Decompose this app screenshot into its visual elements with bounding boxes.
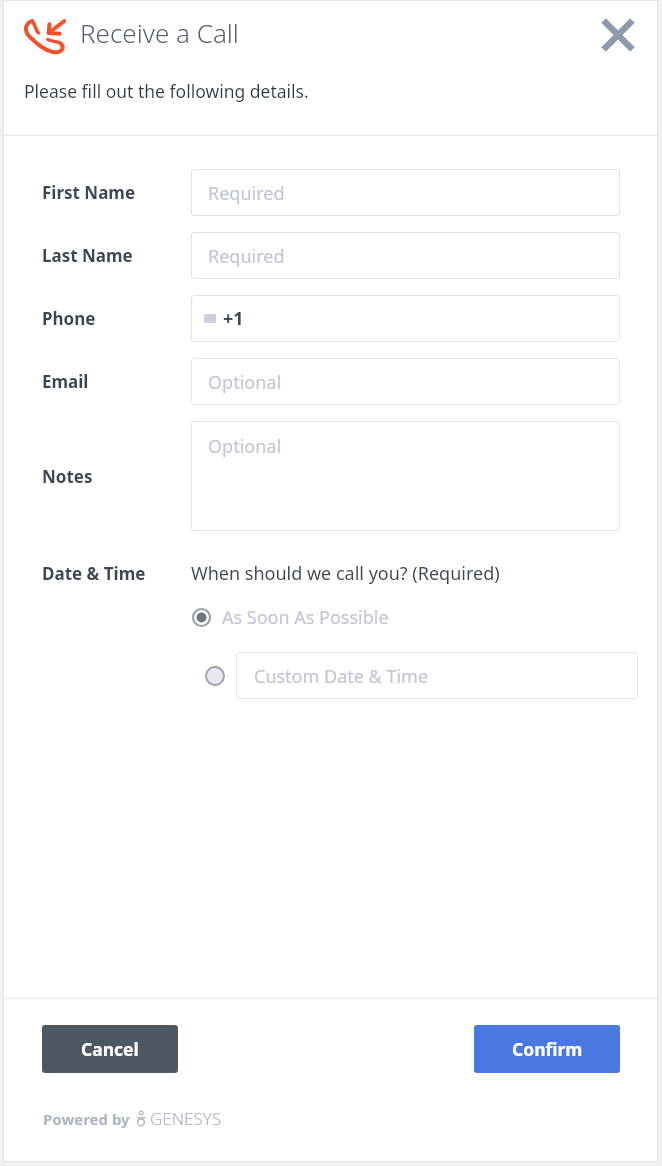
button[interactable]: Custom Date & Time <box>191 652 638 699</box>
button[interactable]: Required <box>191 232 620 279</box>
staticText: Receive a Call <box>80 15 239 50</box>
staticText: Date & Time <box>42 562 191 585</box>
button[interactable]: Cancel <box>42 1025 178 1073</box>
staticText: As Soon As Possible <box>222 605 389 630</box>
staticText: Confirm <box>512 1037 583 1061</box>
button[interactable]: Custom Date & Time <box>236 652 638 699</box>
staticText: Powered by <box>43 1109 130 1129</box>
staticText: Cancel <box>81 1037 139 1061</box>
staticText: Last Name <box>42 244 191 267</box>
staticText: GENESYS <box>150 1107 222 1130</box>
button[interactable]: Optional <box>191 358 620 405</box>
staticText: First Name <box>42 181 191 204</box>
button[interactable]: +1 <box>191 295 620 342</box>
button[interactable]: Close <box>596 13 640 57</box>
staticText: When should we call you? (Required) <box>191 561 500 586</box>
staticText: Phone <box>42 307 191 330</box>
button[interactable]: Confirm <box>474 1025 620 1073</box>
staticText: Required <box>208 181 285 206</box>
button[interactable]: Optional <box>191 421 620 531</box>
staticText: Custom Date & Time <box>254 664 429 689</box>
staticText: Email <box>42 370 191 393</box>
staticText: Optional <box>208 370 282 395</box>
staticText: +1 <box>223 306 244 331</box>
button[interactable]: As Soon As Possible <box>191 605 389 630</box>
staticText: Notes <box>42 465 191 488</box>
staticText: Required <box>208 244 285 269</box>
button[interactable]: Required <box>191 169 620 216</box>
staticText: Please fill out the following details. <box>24 79 309 103</box>
staticText: Optional <box>208 434 282 459</box>
